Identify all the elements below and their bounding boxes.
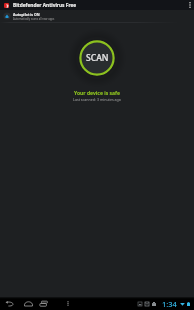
staticText: Automatically scans all new apps bbox=[13, 17, 55, 21]
button[interactable]: More options bbox=[185, 0, 194, 10]
staticText: Autopilot is ON bbox=[13, 12, 40, 17]
button[interactable]: More options bbox=[63, 297, 73, 310]
button[interactable]: Home bbox=[22, 297, 35, 310]
button[interactable]: Autopilot is ON bbox=[0, 10, 194, 22]
button[interactable]: Scan device bbox=[77, 38, 117, 78]
staticText: Your device is safe bbox=[74, 90, 120, 97]
staticText: Bitdefender Antivirus Free bbox=[13, 2, 77, 9]
button[interactable]: Recent apps bbox=[37, 297, 50, 310]
staticText: Last scanned: 3 minutes ago bbox=[73, 97, 121, 102]
button[interactable]: Back bbox=[3, 297, 16, 310]
staticText: 1:34 bbox=[162, 299, 177, 309]
staticText: SCAN bbox=[86, 52, 109, 64]
